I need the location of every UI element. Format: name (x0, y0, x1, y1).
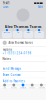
staticText: message (3, 32, 10, 33)
staticText: Recents (11, 87, 17, 89)
staticText: +1 (555) 234-0198 (3, 51, 32, 55)
staticText: Share Contact (3, 73, 21, 77)
button[interactable]: message (2, 31, 12, 38)
staticText: Keypad (29, 87, 35, 89)
button[interactable]: video (23, 31, 33, 38)
staticText: Send Message (3, 67, 22, 70)
staticText: Add to Favorites (3, 79, 25, 83)
button[interactable]: Add to Favorites (0, 78, 46, 84)
button[interactable]: Lists (3, 5, 8, 9)
staticText: 9:41 (3, 1, 10, 5)
button[interactable]: Voicemail (37, 86, 46, 94)
staticText: mail (38, 32, 40, 33)
button[interactable]: mobile (0, 47, 46, 56)
button[interactable]: mail (34, 31, 44, 38)
staticText: Lists (3, 87, 6, 89)
staticText: Edit (38, 5, 43, 9)
button[interactable]: Share Contact (0, 72, 46, 78)
staticText: Alex Thomas Tsoros (8, 41, 32, 44)
staticText: video (26, 32, 30, 33)
button[interactable]: Contacts (18, 86, 28, 94)
button[interactable]: Keypad (28, 86, 37, 94)
staticText: Voicemail (38, 87, 44, 89)
staticText: Notes (3, 57, 11, 61)
staticText: call (17, 32, 19, 33)
button[interactable]: Alex Thomas Tsoros (0, 39, 46, 47)
staticText: Alex Thomas Tsoros (4, 24, 41, 29)
button[interactable]: Lists (0, 86, 9, 94)
button[interactable]: call (13, 31, 22, 38)
button[interactable]: Edit (38, 5, 43, 9)
staticText: Contacts (20, 87, 26, 89)
staticText: mobile (3, 48, 13, 51)
button[interactable]: Send Message (0, 66, 46, 72)
button[interactable]: Recents (9, 86, 18, 94)
staticText: Lists (3, 5, 8, 9)
